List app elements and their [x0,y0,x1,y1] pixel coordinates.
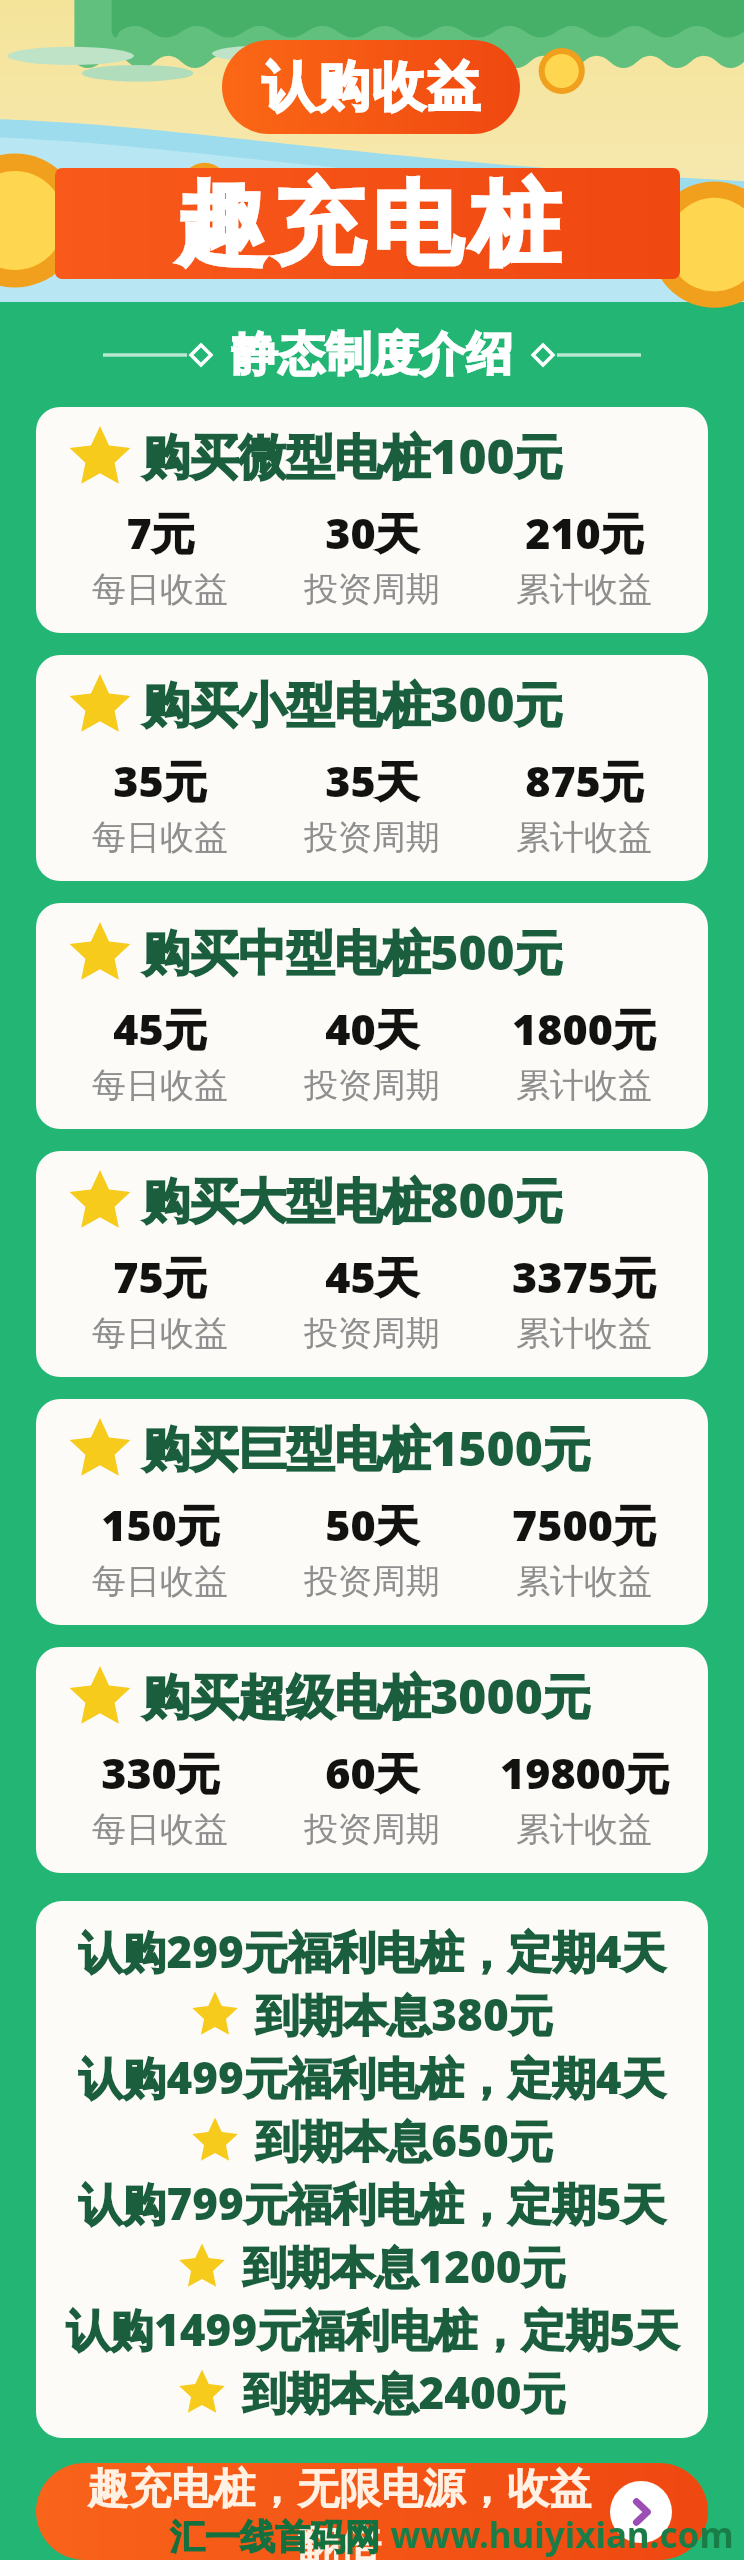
staticText: 累计收益 [516,1808,652,1851]
staticText: 50天 [325,1495,419,1554]
staticText: 投资周期 [304,1808,440,1851]
staticText: 到期本息2400元 [242,2362,566,2422]
staticText: 投资周期 [304,816,440,859]
button[interactable]: 认购299元福利电桩，定期4天 [36,1901,708,2438]
button[interactable]: 趣充电桩，无限电源，收益翻倍 [36,2463,708,2560]
staticText: 购买巨型电桩1500元 [142,1415,591,1481]
staticText: 购买微型电桩100元 [142,423,563,489]
staticText: 每日收益 [92,1312,228,1355]
staticText: 1800元 [512,999,656,1058]
staticText: 75元 [113,1247,207,1306]
staticText: 每日收益 [92,1064,228,1107]
staticText: 累计收益 [516,1064,652,1107]
button[interactable]: 购买超级电桩3000元 [36,1647,708,1873]
staticText: 每日收益 [92,1560,228,1603]
staticText: 到期本息1200元 [242,2236,566,2296]
staticText: 3375元 [512,1247,656,1306]
staticText: 7元 [126,503,195,562]
staticText: 投资周期 [304,568,440,611]
staticText: 每日收益 [92,568,228,611]
button[interactable]: 购买大型电桩800元 [36,1151,708,1377]
staticText: 认购1499元福利电桩，定期5天 [66,2299,679,2359]
staticText: 汇一线首码网 [170,2515,380,2559]
staticText: 35元 [113,751,207,810]
staticText: 购买超级电桩3000元 [142,1663,591,1729]
staticText: 投资周期 [304,1560,440,1603]
staticText: 210元 [525,503,644,562]
staticText: www.huiyixian.com [390,2511,734,2559]
staticText: 静态制度介绍 [231,326,513,384]
staticText: 30天 [325,503,419,562]
other: 立即前往 [610,2481,672,2543]
staticText: 7500元 [512,1495,656,1554]
staticText: 19800元 [500,1743,669,1802]
staticText: 认购收益 [261,54,481,121]
button[interactable]: 购买中型电桩500元 [36,903,708,1129]
staticText: 875元 [525,751,644,810]
button[interactable]: 购买小型电桩300元 [36,655,708,881]
staticText: 购买小型电桩300元 [142,671,563,737]
staticText: 330元 [101,1743,220,1802]
staticText: 40天 [325,999,419,1058]
staticText: 认购799元福利电桩，定期5天 [78,2173,666,2233]
staticText: 认购299元福利电桩，定期4天 [78,1921,666,1981]
staticText: 60天 [325,1743,419,1802]
staticText: 购买中型电桩500元 [142,919,563,985]
staticText: 到期本息650元 [255,2110,553,2170]
staticText: 认购499元福利电桩，定期4天 [78,2047,666,2107]
staticText: 每日收益 [92,1808,228,1851]
staticText: 45天 [325,1247,419,1306]
button[interactable]: 趣充电桩 [55,168,680,279]
staticText: 趣充电桩 [172,168,564,279]
staticText: 45元 [113,999,207,1058]
staticText: 到期本息380元 [255,1984,553,2044]
button[interactable]: 购买巨型电桩1500元 [36,1399,708,1625]
staticText: 累计收益 [516,1560,652,1603]
button[interactable]: 购买微型电桩100元 [36,407,708,633]
button[interactable]: 认购收益 [222,40,520,134]
staticText: 累计收益 [516,816,652,859]
staticText: 购买大型电桩800元 [142,1167,563,1233]
staticText: 累计收益 [516,1312,652,1355]
staticText: 35天 [325,751,419,810]
staticText: 趣充电桩，无限电源，收益翻倍 [76,2463,602,2560]
staticText: 150元 [101,1495,220,1554]
staticText: 投资周期 [304,1312,440,1355]
staticText: 投资周期 [304,1064,440,1107]
staticText: 每日收益 [92,816,228,859]
staticText: 累计收益 [516,568,652,611]
